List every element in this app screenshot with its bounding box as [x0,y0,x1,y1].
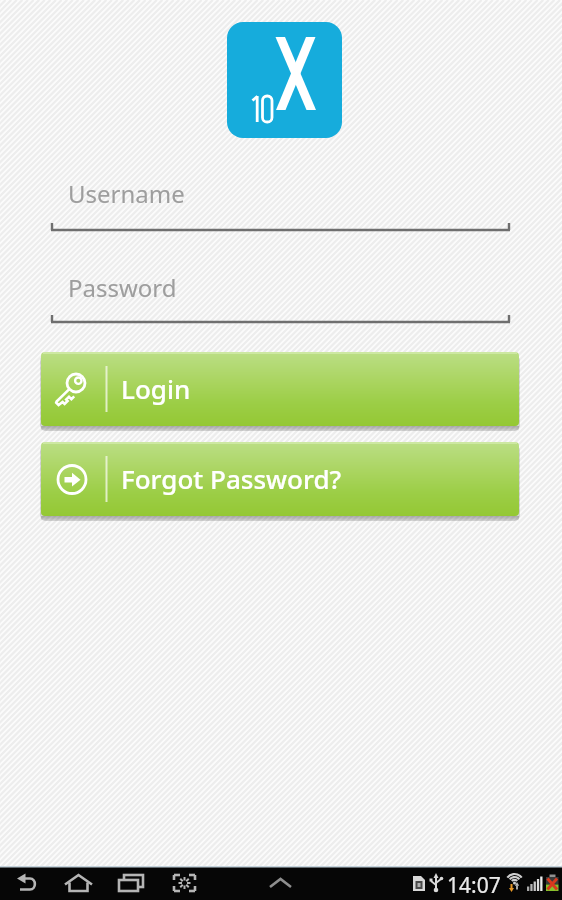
staticText: Forgot Password? [121,461,342,496]
button[interactable]: Forgot Password? [41,442,519,516]
staticText: Password [68,271,177,304]
staticText: Username [68,177,185,210]
staticText: 14:07 [447,871,501,900]
staticText: Login [121,371,191,406]
button[interactable]: Login [41,352,519,426]
